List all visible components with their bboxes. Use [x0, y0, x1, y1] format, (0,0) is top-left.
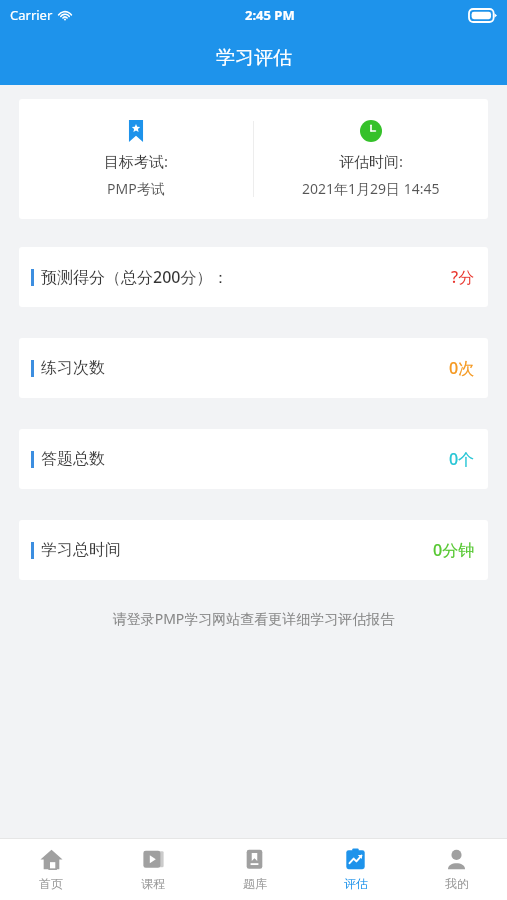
button[interactable]: 练习次数	[19, 338, 488, 398]
staticText: ?分	[451, 266, 475, 288]
button[interactable]: 答题总数	[19, 429, 488, 489]
button[interactable]: 课程	[102, 838, 204, 900]
staticText: 题库	[243, 876, 267, 891]
staticText: 0个	[449, 448, 475, 470]
button[interactable]: 我的	[406, 838, 507, 900]
button[interactable]: 首页	[0, 838, 102, 900]
button[interactable]: 预测得分（总分200分）：	[19, 247, 488, 307]
staticText: 预测得分（总分200分）：	[41, 266, 229, 288]
staticText: 我的	[445, 876, 469, 891]
staticText: 首页	[39, 876, 63, 891]
staticText: 目标考试:	[104, 151, 169, 171]
staticText: 评估时间:	[339, 151, 404, 171]
staticText: 2:45 PM	[245, 6, 295, 24]
staticText: 0次	[449, 357, 475, 379]
staticText: 2021年1月29日 14:45	[302, 179, 440, 198]
button[interactable]: 题库	[204, 838, 305, 900]
staticText: 0分钟	[433, 539, 475, 561]
staticText: PMP考试	[107, 179, 165, 198]
staticText: 练习次数	[41, 358, 105, 378]
staticText: 答题总数	[41, 449, 105, 469]
staticText: 学习总时间	[41, 540, 121, 560]
button[interactable]: 评估时间:	[254, 99, 488, 219]
staticText: Carrier	[10, 6, 53, 24]
staticText: 学习评估	[216, 46, 292, 70]
staticText: 课程	[141, 876, 165, 891]
staticText: 请登录PMP学习网站查看更详细学习评估报告	[0, 609, 507, 628]
button[interactable]: 目标考试:	[19, 99, 253, 219]
button[interactable]: 评估	[305, 838, 406, 900]
button[interactable]: 学习总时间	[19, 520, 488, 580]
staticText: 评估	[344, 876, 368, 891]
